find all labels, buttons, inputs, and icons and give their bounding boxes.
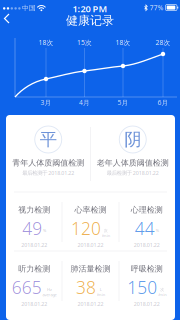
staticText: 心率检测 bbox=[74, 205, 106, 215]
staticText: 15次 bbox=[77, 38, 92, 47]
button[interactable]: 心理检测 bbox=[119, 192, 175, 251]
staticText: 6月 bbox=[157, 98, 168, 107]
staticText: 2018.01.22 bbox=[134, 300, 160, 307]
staticText: 150 bbox=[127, 276, 157, 299]
staticText: L bbox=[100, 287, 102, 292]
staticText: 2018.01.22 bbox=[21, 300, 47, 307]
staticText: /min bbox=[102, 233, 110, 238]
staticText: 中国 bbox=[22, 4, 36, 12]
button[interactable]: 平 bbox=[6, 115, 90, 192]
staticText: 665 bbox=[12, 276, 42, 299]
staticText: 18次 bbox=[38, 38, 53, 47]
staticText: 听力检测 bbox=[18, 264, 50, 274]
staticText: 2018.01.22 bbox=[21, 241, 47, 248]
staticText: 平 bbox=[40, 129, 57, 150]
staticText: 18次 bbox=[115, 38, 130, 47]
staticText: 次 bbox=[160, 287, 164, 292]
staticText: 28次 bbox=[155, 38, 170, 47]
staticText: 健康记录 bbox=[66, 13, 114, 28]
staticText: 最后检测于 2018.01.22 bbox=[22, 169, 74, 176]
staticText: 呼吸检测 bbox=[131, 264, 163, 274]
staticText: 1:20 PM bbox=[72, 2, 107, 15]
staticText: 心理检测 bbox=[131, 205, 163, 215]
staticText: 4月 bbox=[79, 98, 90, 107]
staticText: 2018.01.22 bbox=[77, 300, 103, 307]
staticText: 2018.01.22 bbox=[77, 241, 103, 248]
button[interactable]: 阴 bbox=[90, 115, 175, 192]
staticText: 老年人体质阈值检测 bbox=[97, 158, 169, 168]
staticText: 44 bbox=[135, 217, 155, 240]
staticText: average bbox=[42, 292, 56, 297]
button[interactable]: 肺活量检测 bbox=[62, 251, 119, 310]
staticText: /min bbox=[97, 292, 105, 297]
button[interactable]: 视力检测 bbox=[6, 192, 62, 251]
staticText: 次 bbox=[104, 228, 108, 233]
button[interactable]: 听力检测 bbox=[6, 251, 62, 310]
staticText: 肺活量检测 bbox=[70, 264, 110, 274]
staticText: /min bbox=[158, 292, 166, 297]
staticText: Hz bbox=[47, 287, 52, 292]
staticText: 38 bbox=[76, 276, 96, 299]
staticText: 77% bbox=[150, 3, 164, 12]
button[interactable]: Back bbox=[0, 12, 20, 34]
staticText: % bbox=[43, 228, 46, 233]
staticText: 阴 bbox=[124, 129, 141, 150]
staticText: 视力检测 bbox=[18, 205, 50, 215]
staticText: 最后检测于 2018.01.22 bbox=[107, 169, 159, 176]
staticText: 2018.01.22 bbox=[134, 241, 160, 248]
button[interactable]: 心率检测 bbox=[62, 192, 119, 251]
staticText: % bbox=[156, 228, 159, 233]
staticText: 3月 bbox=[40, 98, 51, 107]
button[interactable]: 呼吸检测 bbox=[119, 251, 175, 310]
staticText: 49 bbox=[22, 217, 42, 240]
staticText: 120 bbox=[71, 217, 101, 240]
staticText: 5月 bbox=[117, 98, 128, 107]
staticText: 青年人体质阈值检测 bbox=[12, 158, 84, 168]
